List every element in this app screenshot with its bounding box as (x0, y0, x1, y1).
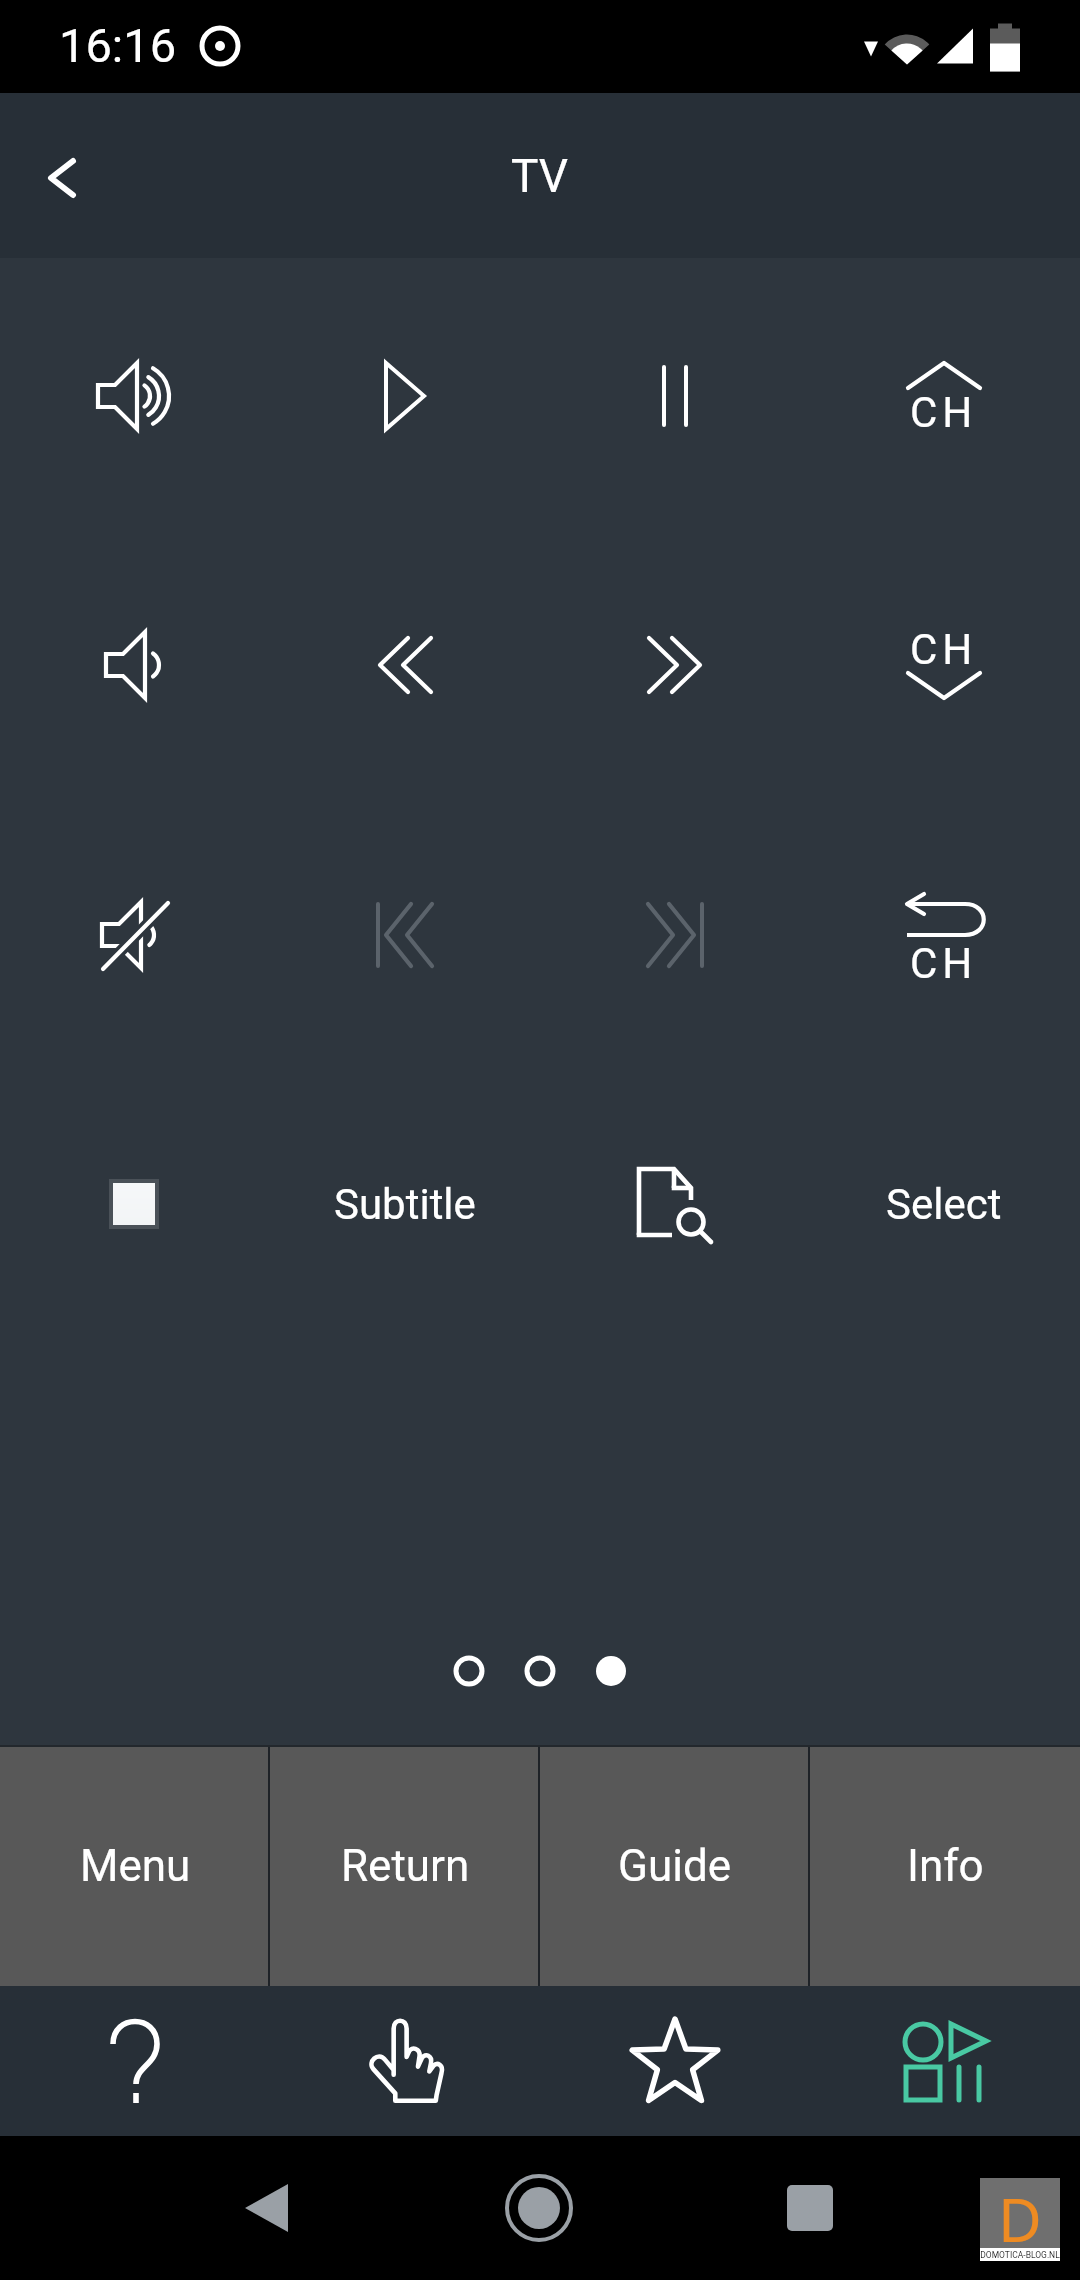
button[interactable]: Touchpad (270, 1986, 540, 2136)
button[interactable]: Volume up (34, 296, 234, 496)
button[interactable]: Fast forward (575, 565, 775, 765)
button[interactable]: Channel down (844, 565, 1044, 765)
staticText: CH (910, 388, 978, 437)
button[interactable]: Subtitle (305, 1104, 505, 1304)
button[interactable]: Favourites (540, 1986, 810, 2136)
button[interactable]: Devices (810, 1986, 1080, 2136)
staticText: TV (511, 149, 569, 203)
staticText: D (998, 2178, 1042, 2248)
button[interactable]: Help (0, 1986, 270, 2136)
button[interactable]: Pause (575, 296, 775, 496)
staticText: Menu (80, 1840, 191, 1892)
button[interactable]: Info (810, 1745, 1080, 1986)
staticText: Guide (618, 1840, 732, 1892)
staticText: DOMOTICA-BLOG.NL (980, 2250, 1060, 2260)
staticText: Return (341, 1840, 470, 1892)
staticText: CH (910, 939, 978, 988)
button[interactable]: Search (575, 1104, 775, 1304)
button[interactable]: Play (305, 296, 505, 496)
button[interactable]: Back (4, 121, 114, 231)
button[interactable]: Mute (34, 835, 234, 1035)
button[interactable]: Menu (0, 1745, 270, 1986)
staticText: Info (907, 1840, 984, 1892)
button[interactable]: Volume down (34, 565, 234, 765)
button[interactable]: Rewind (305, 565, 505, 765)
staticText: 16:16 (59, 18, 177, 73)
staticText: Subtitle (334, 1180, 476, 1229)
button[interactable]: Next (575, 835, 775, 1035)
button[interactable]: Channel return (844, 835, 1044, 1035)
button[interactable]: Return (270, 1745, 540, 1986)
button[interactable]: Select (844, 1104, 1044, 1304)
button[interactable]: Previous (305, 835, 505, 1035)
button[interactable]: Channel up (844, 296, 1044, 496)
button[interactable]: Guide (540, 1745, 810, 1986)
button[interactable]: Stop (34, 1104, 234, 1304)
staticText: CH (910, 625, 978, 674)
staticText: Select (886, 1180, 1002, 1229)
